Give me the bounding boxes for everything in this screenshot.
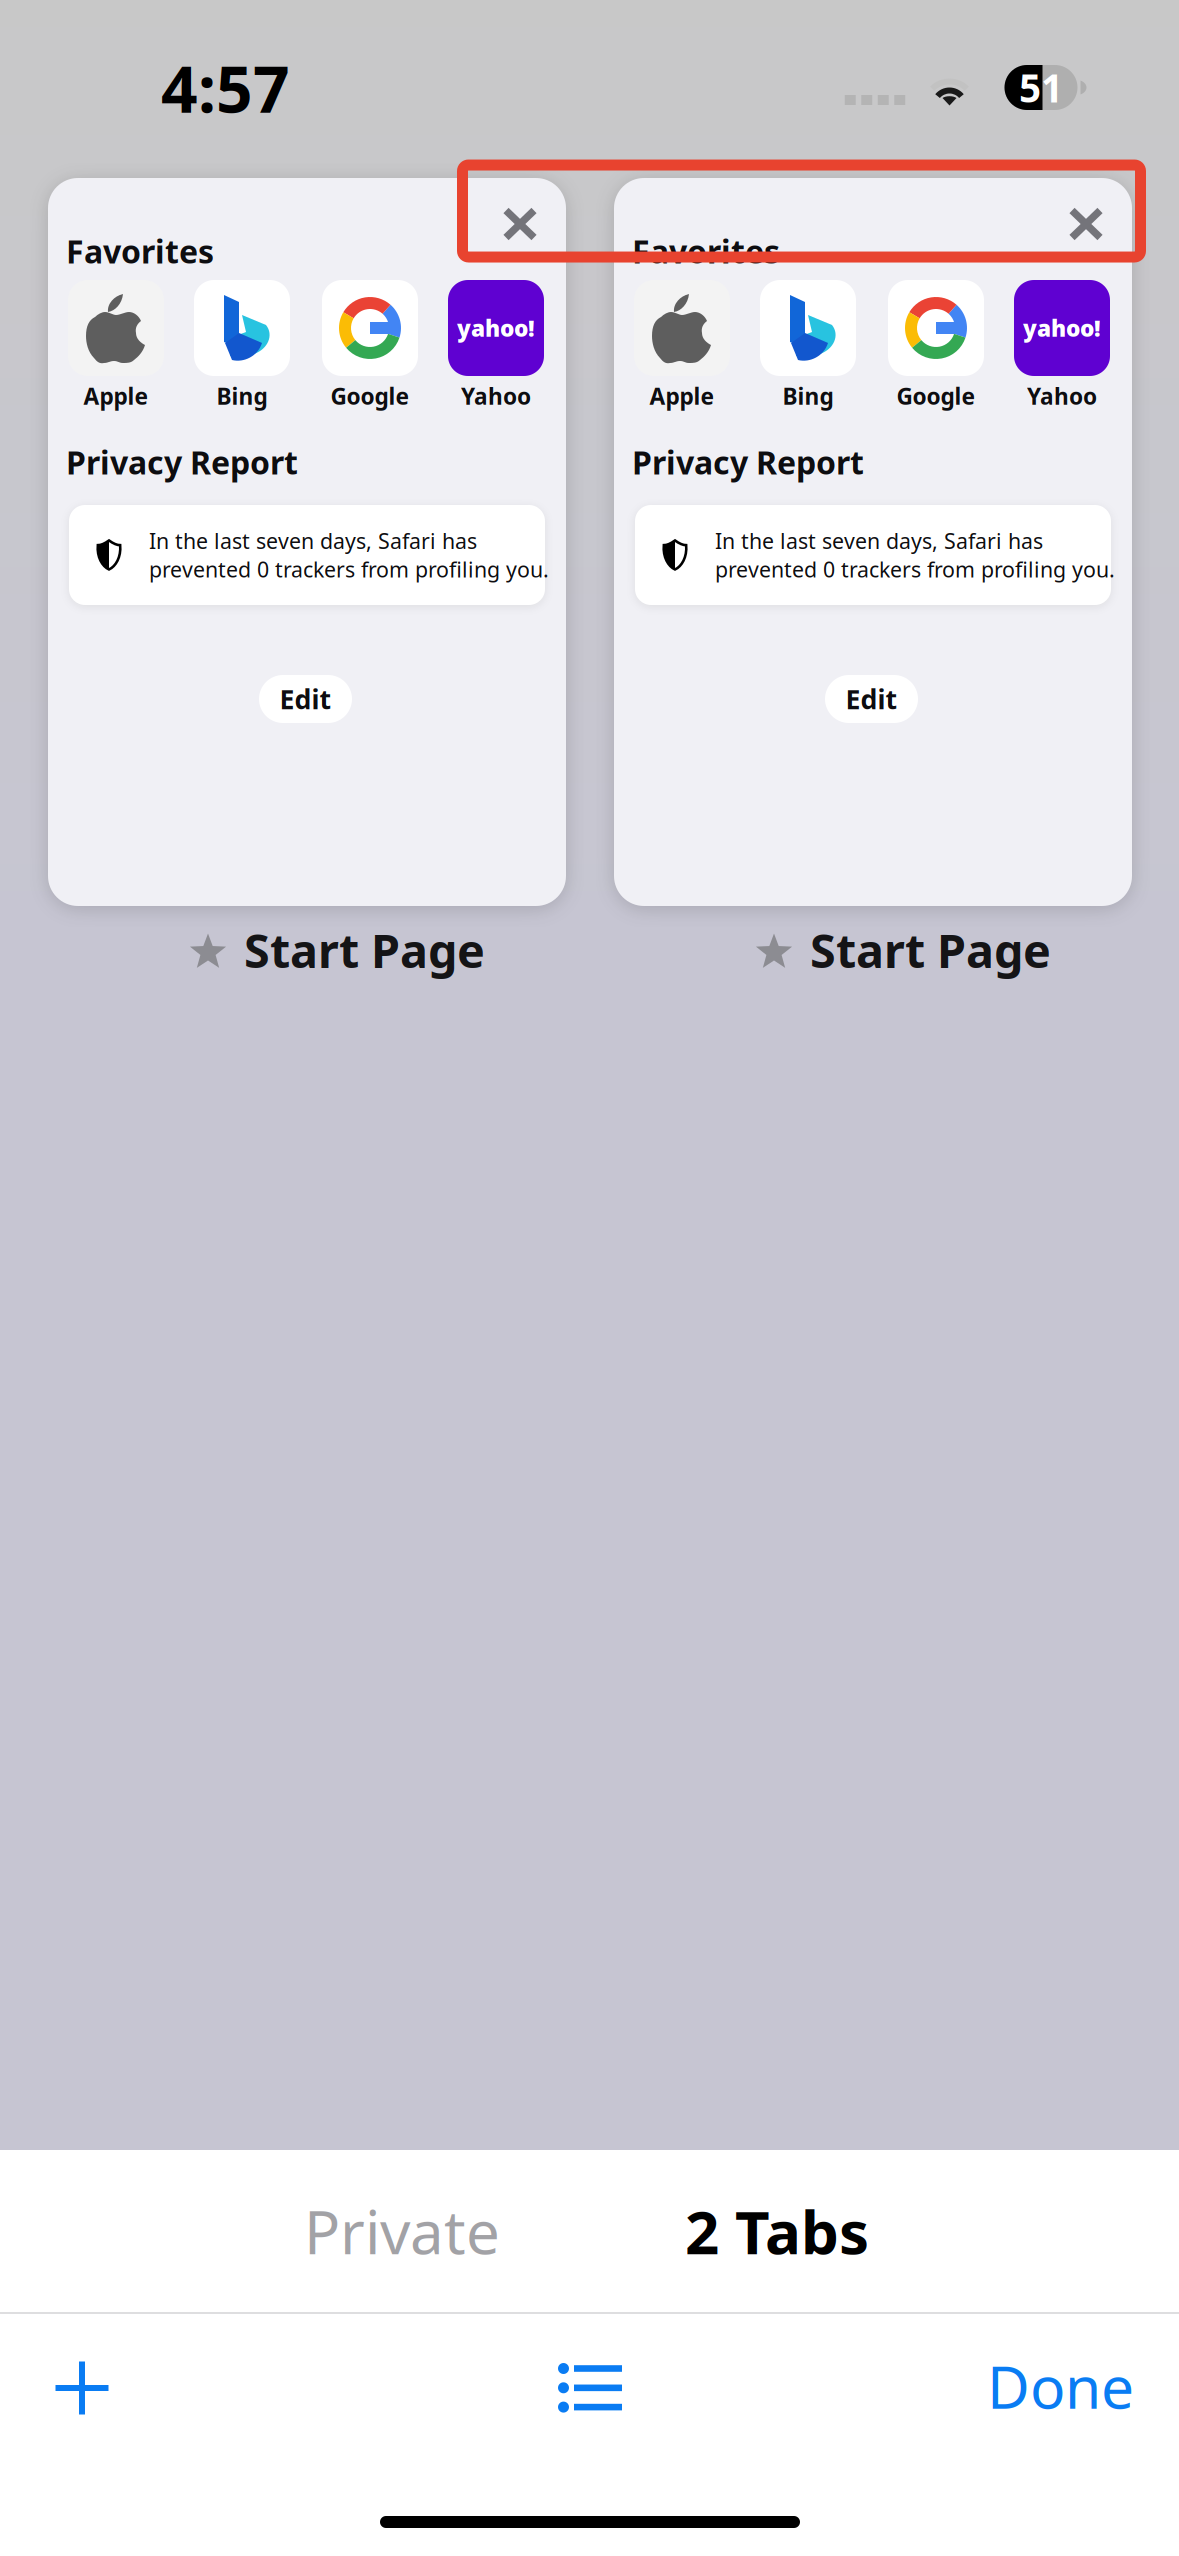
staticText: Apple bbox=[649, 381, 714, 411]
button[interactable]: Done bbox=[974, 2336, 1134, 2436]
button[interactable]: Edit bbox=[259, 675, 352, 723]
button[interactable]: Private bbox=[262, 2181, 542, 2281]
staticText: 2 Tabs bbox=[685, 2191, 869, 2271]
button[interactable]: Google bbox=[322, 280, 418, 376]
button[interactable]: Close tab bbox=[1038, 178, 1134, 270]
button[interactable]: Apple bbox=[634, 280, 730, 376]
staticText: Start Page bbox=[244, 919, 485, 981]
button[interactable]: Start Page bbox=[614, 923, 1132, 979]
staticText: 51 bbox=[1019, 62, 1063, 113]
button[interactable]: In the last seven days, Safari has preve… bbox=[69, 505, 545, 605]
button[interactable]: New tab bbox=[27, 2333, 137, 2443]
staticText: Privacy Report bbox=[66, 441, 298, 483]
staticText: Yahoo bbox=[461, 381, 531, 411]
staticText: Favorites bbox=[632, 230, 780, 272]
button[interactable]: Close tab bbox=[472, 178, 568, 270]
button[interactable]: Yahoo bbox=[1014, 280, 1110, 376]
staticText: Edit bbox=[279, 681, 331, 717]
staticText: Start Page bbox=[810, 919, 1051, 981]
button[interactable]: Apple bbox=[68, 280, 164, 376]
button[interactable]: Edit bbox=[825, 675, 918, 723]
staticText: Done bbox=[987, 2347, 1134, 2425]
button[interactable]: Tab groups bbox=[535, 2333, 645, 2443]
staticText: yahoo! bbox=[457, 313, 535, 343]
button[interactable]: Bing bbox=[760, 280, 856, 376]
button[interactable]: Yahoo bbox=[448, 280, 544, 376]
button[interactable]: Google bbox=[888, 280, 984, 376]
staticText: yahoo! bbox=[1023, 313, 1101, 343]
staticText: Bing bbox=[782, 381, 833, 411]
staticText: 4:57 bbox=[161, 45, 290, 130]
button[interactable]: 2 Tabs bbox=[652, 2181, 902, 2281]
staticText: Private bbox=[304, 2191, 500, 2271]
staticText: In the last seven days, Safari has preve… bbox=[715, 527, 1115, 583]
staticText: Google bbox=[330, 381, 409, 411]
staticText: Edit bbox=[845, 681, 897, 717]
button[interactable]: Bing bbox=[194, 280, 290, 376]
staticText: In the last seven days, Safari has preve… bbox=[149, 527, 549, 583]
staticText: Privacy Report bbox=[632, 441, 864, 483]
staticText: Google bbox=[896, 381, 975, 411]
staticText: Favorites bbox=[66, 230, 214, 272]
staticText: Apple bbox=[83, 381, 148, 411]
button[interactable]: In the last seven days, Safari has preve… bbox=[635, 505, 1111, 605]
staticText: Bing bbox=[216, 381, 267, 411]
staticText: Yahoo bbox=[1027, 381, 1097, 411]
button[interactable]: Start Page bbox=[48, 923, 566, 979]
